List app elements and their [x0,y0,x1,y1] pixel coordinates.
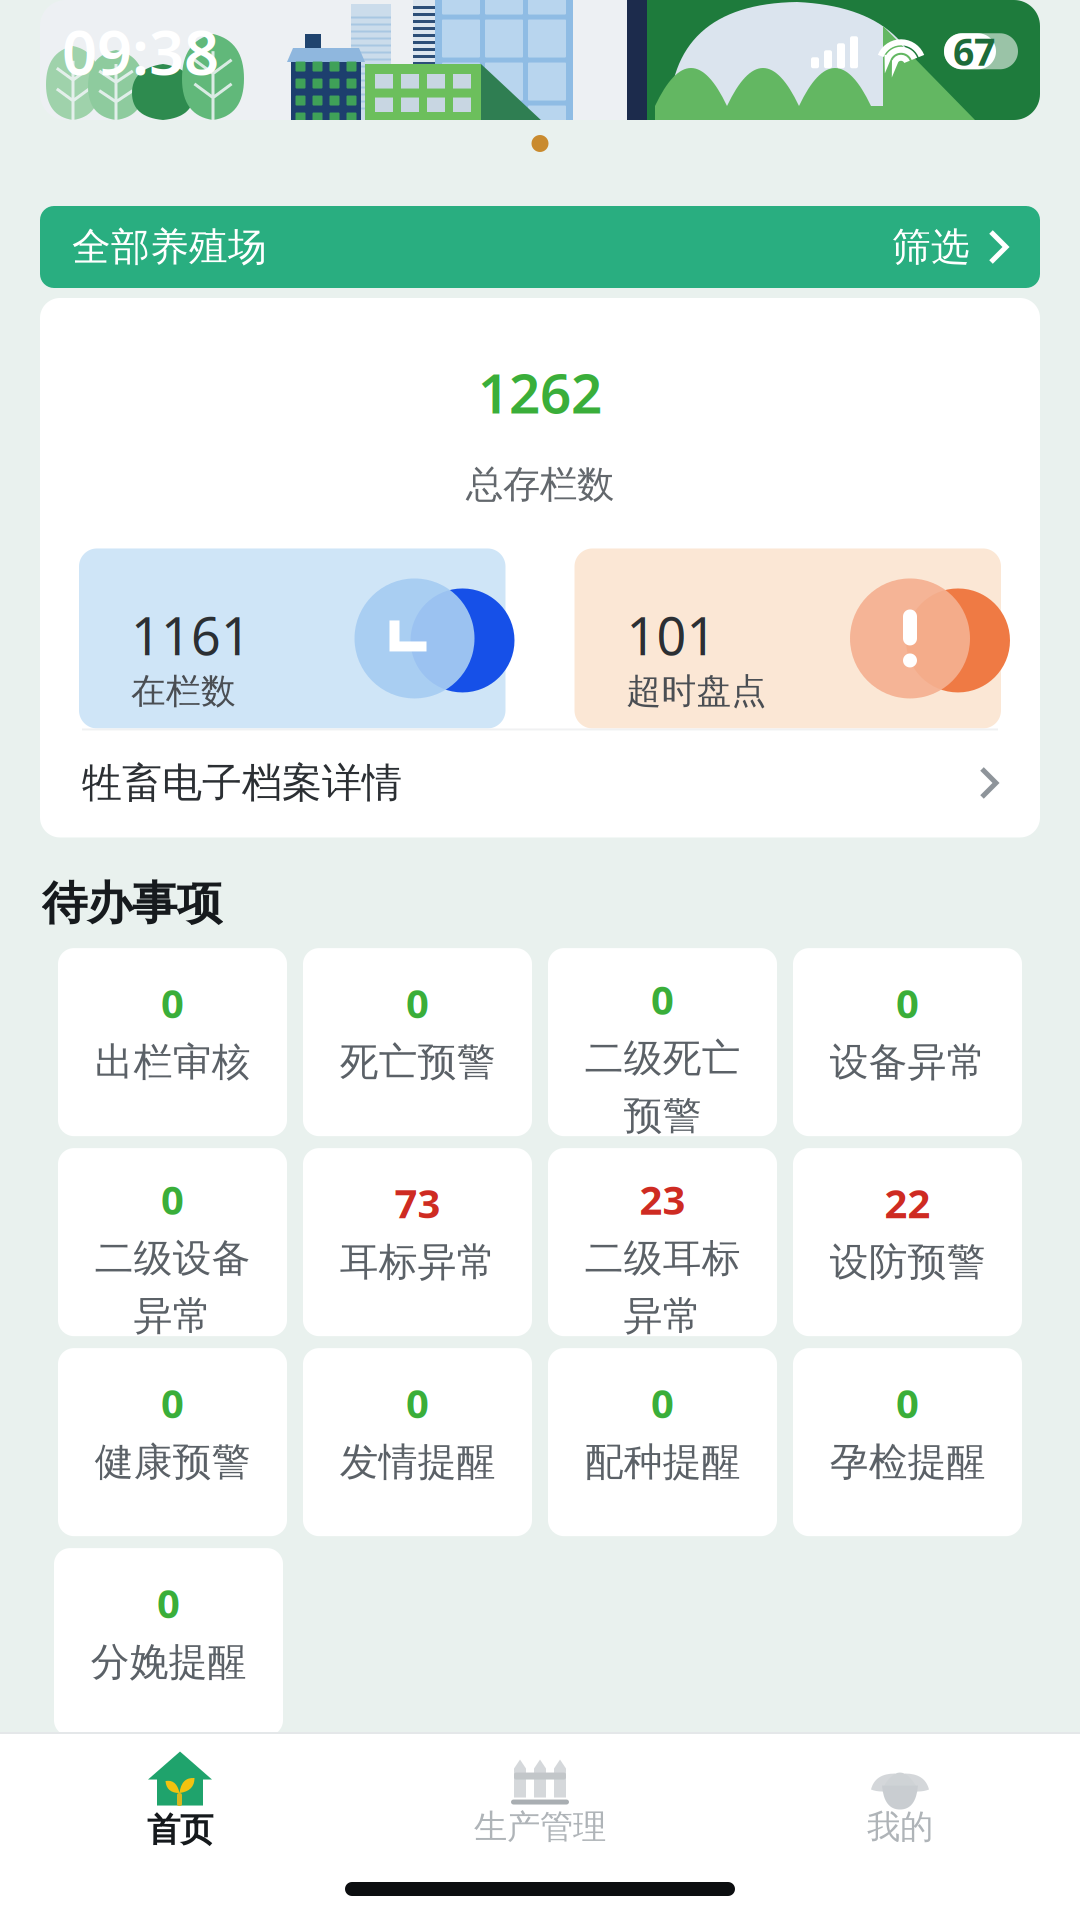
button[interactable]: 0 [58,948,287,1136]
staticText: 二级耳标 异常 [584,1235,740,1340]
staticText: 0 [896,1376,919,1429]
button[interactable]: 首页 [0,1741,360,1850]
staticText: 总存栏数 [466,462,614,507]
staticText: 二级设备 异常 [94,1235,250,1340]
staticText: 0 [651,1376,674,1429]
staticText: 筛选 [892,223,970,271]
staticText: 0 [161,1376,184,1429]
button[interactable]: 0 [548,948,777,1136]
staticText: 分娩提醒 [90,1638,246,1686]
staticText: 67 [953,26,995,76]
staticText: 超时盘点 [626,670,766,712]
staticText: 101 [626,600,716,670]
staticText: 设防预警 [829,1238,985,1286]
staticText: 0 [161,976,184,1029]
button[interactable]: 0 [303,1348,532,1536]
button[interactable]: 0 [58,1348,287,1536]
staticText: 健康预警 [94,1438,250,1486]
button[interactable]: 生产管理 [360,1744,720,1847]
staticText: 0 [161,1173,184,1226]
staticText: 23 [639,1173,685,1226]
staticText: 孕检提醒 [829,1438,985,1486]
button[interactable]: 73 [303,1148,532,1336]
staticText: 首页 [147,1809,213,1850]
staticText: 二级死亡 预警 [584,1035,740,1140]
button[interactable]: 我的 [720,1744,1080,1847]
staticText: 09:38 [62,11,219,92]
button[interactable]: 0 [54,1548,283,1736]
button[interactable]: 22 [793,1148,1022,1336]
staticText: 73 [394,1176,440,1229]
staticText: 死亡预警 [339,1038,495,1086]
staticText: 0 [406,976,429,1029]
staticText: 1262 [478,356,602,429]
button[interactable]: 23 [548,1148,777,1336]
staticText: 发情提醒 [339,1438,495,1486]
button[interactable]: 1161 [79,548,505,728]
staticText: 0 [157,1576,180,1629]
staticText: 0 [896,976,919,1029]
button[interactable]: 0 [58,1148,287,1336]
staticText: 我的 [867,1806,933,1847]
button[interactable]: 0 [548,1348,777,1536]
staticText: 牲畜电子档案详情 [82,758,402,807]
staticText: 0 [651,973,674,1026]
staticText: 全部养殖场 [72,223,267,271]
staticText: 配种提醒 [584,1438,740,1486]
staticText: 耳标异常 [339,1238,495,1286]
staticText: 出栏审核 [94,1038,250,1086]
staticText: 0 [406,1376,429,1429]
staticText: 待办事项 [42,875,222,931]
button[interactable]: 全部养殖场 [40,206,1040,288]
staticText: 在栏数 [131,670,236,712]
staticText: 22 [884,1176,930,1229]
button[interactable]: 0 [793,1348,1022,1536]
staticText: 设备异常 [829,1038,985,1086]
staticText: 1161 [131,600,251,670]
button[interactable]: 牲畜电子档案详情 [40,728,1040,837]
staticText: 生产管理 [474,1806,606,1847]
button[interactable]: 0 [303,948,532,1136]
button[interactable]: 101 [574,548,1001,728]
button[interactable]: 0 [793,948,1022,1136]
